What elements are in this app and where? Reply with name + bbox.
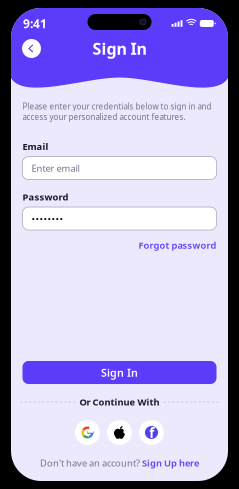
button[interactable]: Sign Up here: [142, 457, 199, 469]
button[interactable]: ••••••••: [22, 207, 216, 230]
button[interactable]: Back: [22, 39, 41, 58]
button[interactable]: Enter email: [22, 157, 216, 180]
staticText: Or Continue With: [79, 396, 159, 408]
button[interactable]: Sign in with Facebook: [139, 420, 164, 445]
staticText: ••••••••: [31, 212, 63, 225]
button[interactable]: Forgot password: [138, 239, 216, 251]
staticText: Email: [22, 140, 48, 153]
staticText: f: [149, 424, 154, 442]
button[interactable]: Sign in with Apple: [107, 420, 132, 445]
button[interactable]: Sign in with Google: [75, 420, 100, 445]
staticText: Sign In: [101, 365, 138, 380]
staticText: Forgot password: [138, 239, 216, 251]
staticText: Password: [22, 191, 68, 203]
staticText: Don't have an account?: [40, 457, 142, 469]
staticText: Sign In: [92, 38, 146, 59]
button[interactable]: Sign In: [22, 361, 216, 384]
staticText: Please enter your credentials below to s…: [22, 101, 211, 122]
staticText: 9:41: [23, 15, 47, 31]
staticText: Enter email: [31, 162, 79, 174]
staticText: Sign Up here: [142, 457, 199, 469]
